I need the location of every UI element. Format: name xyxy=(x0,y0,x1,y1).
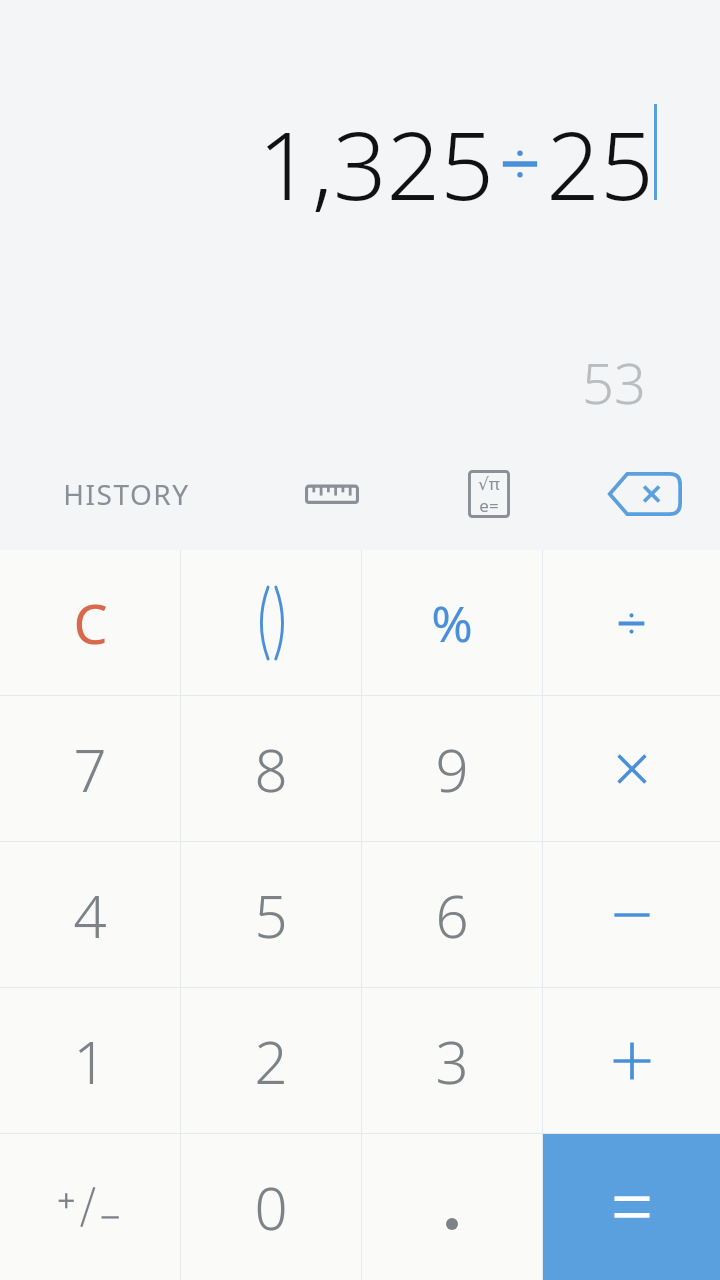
button[interactable]: 6 xyxy=(362,842,542,988)
staticText: C xyxy=(73,586,108,660)
staticText: 1,325 xyxy=(258,100,494,228)
button[interactable]: 7 xyxy=(0,696,180,842)
staticText: 6 xyxy=(435,876,469,955)
staticText: % xyxy=(431,589,473,657)
button[interactable]: 4 xyxy=(0,842,180,988)
button[interactable] xyxy=(543,842,720,988)
button[interactable] xyxy=(181,550,361,696)
staticText: e= xyxy=(479,494,499,516)
staticText: 53 xyxy=(582,344,646,420)
button[interactable]: 9 xyxy=(362,696,542,842)
button[interactable] xyxy=(543,988,720,1134)
button[interactable]: 5 xyxy=(181,842,361,988)
button[interactable] xyxy=(543,696,720,842)
button[interactable]: Unit converter xyxy=(253,456,410,532)
button[interactable]: 3 xyxy=(362,988,542,1134)
button[interactable]: 8 xyxy=(181,696,361,842)
staticText: 9 xyxy=(435,730,469,809)
button[interactable]: Backspace xyxy=(567,456,720,532)
button[interactable] xyxy=(543,1134,720,1280)
button[interactable]: C xyxy=(0,550,180,696)
button[interactable]: 0 xyxy=(181,1134,361,1280)
staticText: 5 xyxy=(254,876,288,955)
staticText: 4 xyxy=(73,876,107,955)
staticText: 8 xyxy=(254,730,288,809)
staticText: 3 xyxy=(435,1022,469,1101)
button[interactable] xyxy=(362,1134,542,1280)
staticText: √π xyxy=(478,472,500,494)
button[interactable]: HISTORY xyxy=(0,456,253,532)
staticText: 0 xyxy=(254,1168,288,1247)
button[interactable]: Scientific calculator xyxy=(410,456,567,532)
button[interactable]: 1 xyxy=(0,988,180,1134)
button[interactable]: % xyxy=(362,550,542,696)
button[interactable] xyxy=(543,550,720,696)
staticText: 7 xyxy=(73,730,107,809)
staticText: HISTORY xyxy=(63,475,190,513)
staticText: 25 xyxy=(546,100,654,228)
button[interactable]: 2 xyxy=(181,988,361,1134)
button[interactable] xyxy=(0,1134,180,1280)
staticText: 1 xyxy=(73,1022,107,1101)
staticText: 2 xyxy=(254,1022,288,1101)
